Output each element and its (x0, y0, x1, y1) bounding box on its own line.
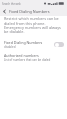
staticText: Fixed Dialing Numbers (9, 9, 50, 14)
staticText: Restrict which numbers can be dialed fro… (4, 16, 63, 34)
staticText: disabled (4, 45, 16, 49)
button[interactable]: Fixed Dialing Numbers (0, 39, 67, 50)
button[interactable]: Back (0, 7, 9, 16)
staticText: Fixed Dialing Numbers (4, 40, 43, 45)
button[interactable]: Authorized numbers (0, 52, 67, 63)
staticText: Search the web (2, 2, 21, 6)
staticText: List of numbers that can be dialed (4, 58, 51, 62)
staticText: Authorized numbers (4, 53, 39, 58)
